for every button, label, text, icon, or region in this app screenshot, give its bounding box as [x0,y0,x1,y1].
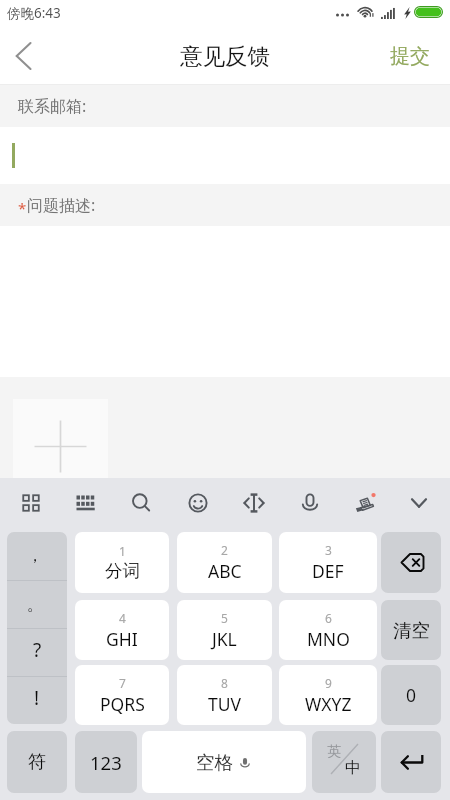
staticText: 5 [221,610,228,626]
staticText: MNO [307,627,350,651]
button[interactable]: 6 [279,600,377,660]
staticText: 7 [119,675,126,691]
button[interactable]: 空格 [142,731,306,793]
button[interactable]: Handwriting [344,483,386,523]
staticText: WXYZ [305,692,352,716]
button[interactable]: Hide keyboard [398,483,440,523]
button[interactable]: 。 [7,581,67,628]
button[interactable]: ， [7,532,67,724]
staticText: 8 [221,675,228,691]
button[interactable]: 3 [279,532,377,593]
staticText: 6 [325,610,332,626]
staticText: 分词 [105,560,140,582]
staticText: 。 [27,595,43,615]
staticText: GHI [106,627,138,651]
button[interactable]: Backspace [381,532,441,593]
staticText: DEF [312,559,344,583]
button[interactable]: 123 [75,731,137,793]
button[interactable]: Emoji [177,483,219,523]
button[interactable]: Search [120,483,162,523]
staticText: ABC [208,559,242,583]
staticText: ? [33,637,42,663]
button[interactable]: 8 [177,665,272,725]
staticText: 2 [221,542,228,558]
staticText: 123 [90,750,122,775]
staticText: 清空 [393,619,430,642]
button[interactable]: 4 [75,600,169,660]
staticText: JKL [212,627,237,651]
button[interactable]: Keyboard layouts [10,483,52,523]
button[interactable]: 5 [177,600,272,660]
button[interactable]: 7 [75,665,169,725]
staticText: 联系邮箱: [18,95,87,117]
button[interactable]: Enter [381,731,441,793]
button[interactable]: Move cursor [233,483,275,523]
other: Enter [381,731,441,793]
button[interactable]: ， [7,532,67,580]
button[interactable]: Back [2,32,50,80]
button[interactable]: ? [7,629,67,676]
button[interactable]: 0 [381,665,441,725]
button[interactable]: 符 [7,731,67,793]
button[interactable]: Keyboard [65,483,107,523]
staticText: 中 [345,758,361,778]
staticText: 1 [119,543,126,559]
staticText: ， [27,546,43,566]
staticText: TUV [208,692,242,716]
button[interactable]: 1 [75,532,169,593]
staticText: 意见反馈 [180,42,270,70]
button[interactable]: ! [7,677,67,724]
staticText: 0 [406,683,417,707]
staticText: ! [34,685,40,711]
staticText: * [18,198,27,218]
staticText: 问题描述: [27,194,96,216]
staticText: 符 [28,751,46,774]
staticText: 傍晚6:43 [7,4,61,22]
staticText: 9 [325,675,332,691]
other: Backspace [381,532,441,593]
button[interactable]: 清空 [381,600,441,660]
staticText: PQRS [100,692,145,716]
staticText: 空格 [196,751,233,774]
button[interactable]: Voice input [289,483,331,523]
staticText: 4 [119,610,126,626]
button[interactable]: 提交 [380,28,440,84]
staticText: 提交 [390,44,430,69]
staticText: 英 [327,743,341,761]
button[interactable]: 2 [177,532,272,593]
button[interactable]: 英 [312,731,376,793]
button[interactable]: Add image [13,399,108,478]
button[interactable]: 9 [279,665,377,725]
staticText: 3 [325,542,332,558]
